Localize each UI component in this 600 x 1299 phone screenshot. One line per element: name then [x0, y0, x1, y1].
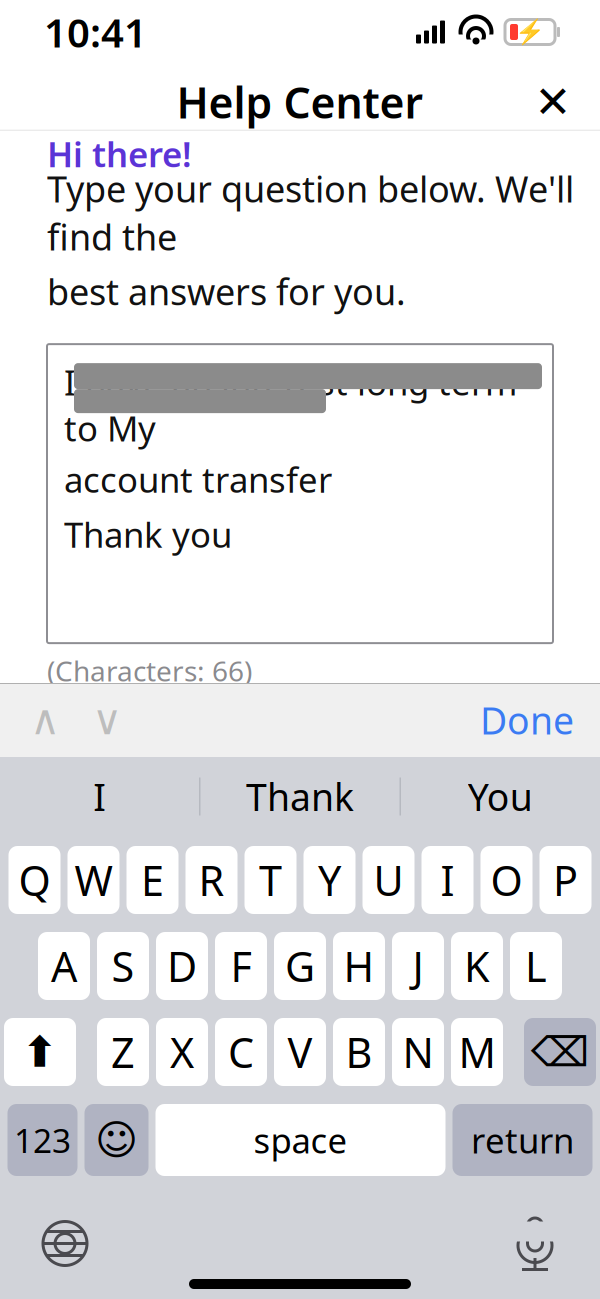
staticText: T — [259, 853, 282, 907]
button[interactable]: K — [451, 932, 503, 1000]
button[interactable]: Y — [303, 846, 355, 914]
button[interactable]: V — [274, 1018, 326, 1086]
button[interactable]: Dictate — [500, 1211, 570, 1275]
staticText: Thank you — [64, 511, 232, 557]
staticText: B — [345, 1025, 372, 1079]
button[interactable]: I — [0, 757, 199, 836]
button[interactable]: W — [67, 846, 119, 914]
staticText: R — [198, 853, 224, 907]
staticText: C — [228, 1025, 254, 1079]
button[interactable]: Shift — [4, 1018, 76, 1086]
button[interactable]: R — [185, 846, 237, 914]
staticText: (Characters: 66) — [47, 652, 252, 689]
button[interactable]: J — [392, 932, 444, 1000]
staticText: space — [253, 1117, 347, 1163]
button[interactable]: U — [362, 846, 414, 914]
staticText: U — [373, 853, 403, 907]
button[interactable]: P — [539, 846, 591, 914]
staticText: I — [440, 853, 454, 907]
staticText: Hi there! — [47, 131, 192, 177]
button[interactable]: F — [215, 932, 267, 1000]
staticText: account transfer — [64, 456, 332, 502]
staticText: I have an interest long term to My — [64, 359, 517, 451]
staticText: D — [167, 939, 197, 993]
staticText: O — [490, 853, 522, 907]
button[interactable]: Delete — [524, 1018, 596, 1086]
button[interactable]: G — [274, 932, 326, 1000]
staticText: Thank — [246, 772, 354, 821]
button[interactable]: I — [421, 846, 473, 914]
staticText: Type your question below. We'll find the — [47, 165, 574, 260]
button[interactable]: Emoji — [84, 1104, 148, 1176]
staticText: G — [285, 939, 315, 993]
staticText: E — [141, 853, 164, 907]
button[interactable]: H — [333, 932, 385, 1000]
staticText: best answers for you. — [47, 267, 406, 315]
staticText: ✕ — [534, 77, 571, 127]
button[interactable]: Thank — [200, 757, 400, 836]
staticText: W — [74, 853, 112, 907]
button[interactable]: You — [401, 757, 600, 836]
staticText: Y — [318, 853, 341, 907]
staticText: V — [287, 1025, 312, 1079]
staticText: P — [553, 853, 578, 907]
staticText: F — [230, 939, 251, 993]
button[interactable]: space — [155, 1104, 445, 1176]
staticText: A — [51, 939, 77, 993]
button[interactable]: C — [215, 1018, 267, 1086]
staticText: ⌫ — [531, 1028, 589, 1075]
button[interactable]: X — [156, 1018, 208, 1086]
staticText: 123 — [14, 1118, 71, 1162]
button[interactable]: Previous field — [14, 685, 76, 755]
button[interactable]: O — [480, 846, 532, 914]
button[interactable]: D — [156, 932, 208, 1000]
staticText: I — [93, 772, 106, 821]
staticText: Q — [18, 853, 50, 907]
button[interactable]: M — [451, 1018, 503, 1086]
button[interactable]: E — [126, 846, 178, 914]
button[interactable]: A — [38, 932, 90, 1000]
staticText: Z — [111, 1025, 135, 1079]
staticText: Help Center — [176, 74, 423, 130]
staticText: Done — [480, 695, 574, 745]
staticText: M — [458, 1025, 495, 1079]
staticText: ☺ — [95, 1116, 138, 1163]
button[interactable]: Next field — [76, 685, 138, 755]
button[interactable]: N — [392, 1018, 444, 1086]
staticText: S — [111, 939, 134, 993]
button[interactable]: Z — [97, 1018, 149, 1086]
button[interactable]: L — [510, 932, 562, 1000]
staticText: return — [471, 1117, 574, 1163]
button[interactable]: Done — [468, 685, 586, 755]
button[interactable]: T — [244, 846, 296, 914]
button[interactable]: S — [97, 932, 149, 1000]
button[interactable]: 123 — [7, 1104, 77, 1176]
staticText: ⬆ — [22, 1028, 58, 1076]
staticText: K — [464, 939, 490, 993]
staticText: H — [343, 939, 374, 993]
button[interactable]: return — [452, 1104, 592, 1176]
button[interactable]: Close — [522, 71, 584, 133]
staticText: 10:41 — [44, 5, 147, 58]
staticText: L — [525, 939, 547, 993]
staticText: ∧ — [30, 696, 60, 743]
staticText: ⚡ — [515, 18, 545, 46]
staticText: X — [170, 1025, 194, 1079]
button[interactable]: Change keyboard — [30, 1211, 100, 1275]
staticText: You — [468, 772, 533, 821]
staticText: J — [412, 939, 423, 993]
button[interactable]: Q — [8, 846, 60, 914]
button[interactable]: B — [333, 1018, 385, 1086]
staticText: ∨ — [92, 696, 122, 743]
staticText: N — [402, 1025, 433, 1079]
